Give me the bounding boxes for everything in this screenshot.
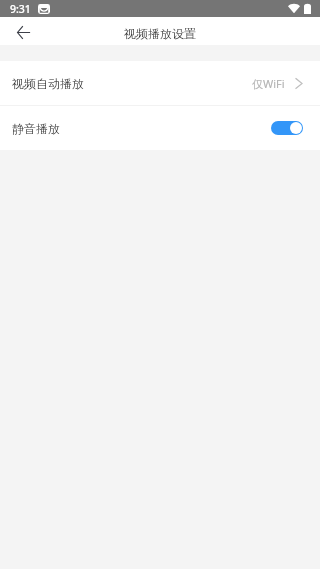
button[interactable]: Mute playback	[271, 121, 303, 135]
staticText: 静音播放	[12, 121, 60, 136]
staticText: 视频自动播放	[12, 76, 84, 91]
button[interactable]: Back	[9, 18, 37, 46]
staticText: 视频播放设置	[124, 26, 196, 41]
button[interactable]: 静音播放	[0, 106, 320, 150]
button[interactable]: 视频自动播放	[0, 61, 320, 105]
staticText: 仅WiFi	[252, 76, 285, 91]
staticText: 9:31	[10, 2, 31, 16]
